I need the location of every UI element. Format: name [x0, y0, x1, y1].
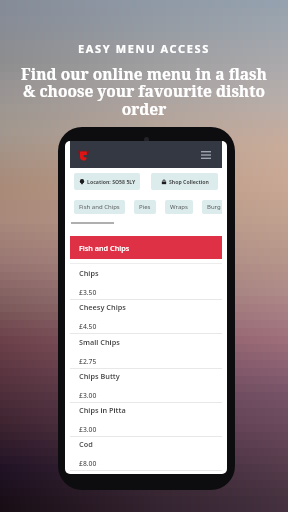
staticText: Shop Collection [169, 178, 209, 185]
staticText: £8.00 [79, 459, 97, 468]
staticText: £3.00 [79, 425, 97, 434]
staticText: £3.50 [79, 288, 97, 297]
staticText: £3.00 [79, 391, 97, 400]
button[interactable]: Cheesy Chips [70, 300, 222, 334]
staticText: Chips in Pitta [79, 405, 126, 415]
staticText: £2.75 [79, 357, 97, 366]
staticText: Chips Butty [79, 371, 120, 381]
staticText: Cod [79, 439, 93, 449]
button[interactable]: Shop Collection [151, 173, 218, 190]
button[interactable]: Burgers [202, 200, 222, 214]
staticText: Burgers [207, 203, 221, 211]
button[interactable]: Fish and Chips [74, 200, 125, 214]
button[interactable]: Small Chips [70, 335, 222, 369]
button[interactable]: Chips in Pitta [70, 403, 222, 437]
staticText: Pies [139, 203, 151, 211]
staticText: Fish and Chips [79, 203, 120, 211]
button[interactable]: Pies [134, 200, 156, 214]
button[interactable]: Open menu [201, 151, 211, 159]
button[interactable]: Chips Butty [70, 369, 222, 403]
staticText: Find our online menu in a flash & choose… [0, 63, 288, 120]
staticText: EASY MENU ACCESS [78, 41, 210, 56]
staticText: Chips [79, 268, 99, 278]
staticText: Fish and Chips [79, 243, 130, 253]
button[interactable]: Chips [70, 266, 222, 300]
button[interactable]: Location: SO58 5LY [74, 173, 140, 190]
staticText: Cheesy Chips [79, 302, 126, 312]
staticText: Location: SO58 5LY [87, 178, 136, 185]
staticText: Wraps [170, 203, 188, 211]
button[interactable]: Cod [70, 437, 222, 471]
staticText: Small Chips [79, 337, 120, 347]
button[interactable]: Wraps [165, 200, 193, 214]
staticText: £4.50 [79, 322, 97, 331]
